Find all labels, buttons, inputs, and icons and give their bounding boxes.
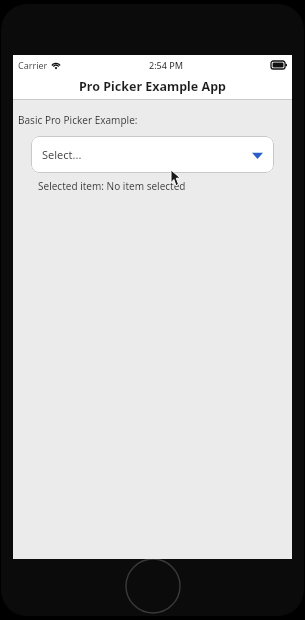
button[interactable]: Select... [31, 136, 274, 173]
staticText: Carrier [18, 59, 48, 71]
staticText: Select... [42, 147, 82, 162]
staticText: Selected item: No item selected [38, 179, 186, 193]
staticText: Basic Pro Picker Example: [18, 113, 138, 127]
staticText: 2:54 PM [149, 59, 183, 71]
staticText: Pro Picker Example App [79, 78, 226, 95]
other: Open picker [251, 149, 263, 161]
